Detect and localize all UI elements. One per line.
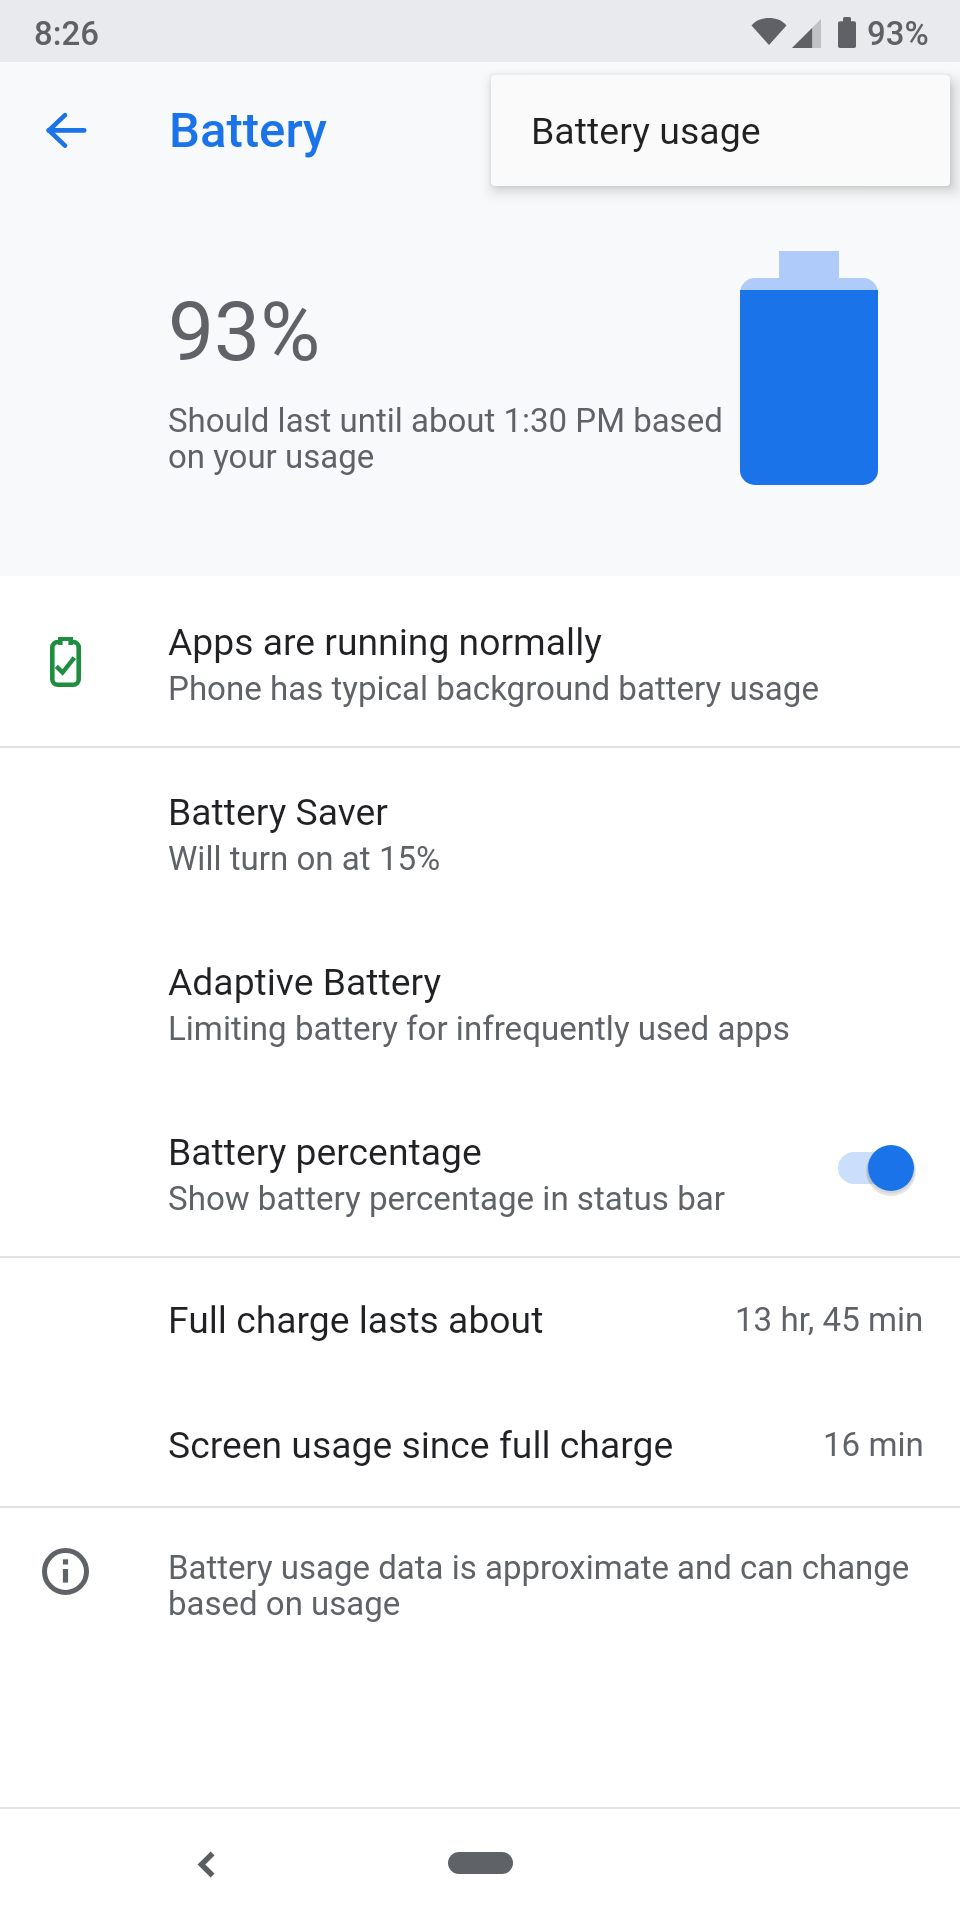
staticText: Battery Saver [168, 790, 388, 834]
staticText: Should last until about 1:30 PM based on… [168, 401, 738, 476]
staticText: 93% [867, 14, 929, 53]
button[interactable]: Adaptive Battery [0, 917, 960, 1087]
staticText: Apps are running normally [168, 620, 602, 664]
staticText: Battery percentage [168, 1130, 482, 1174]
staticText: Battery [169, 102, 327, 159]
staticText: 93% [168, 284, 321, 380]
staticText: Screen usage since full charge [168, 1423, 674, 1467]
button[interactable]: Battery usage [491, 75, 950, 186]
staticText: Battery usage [531, 109, 761, 153]
button[interactable]: Apps are running normally [0, 576, 960, 746]
staticText: 13 hr, 45 min [735, 1300, 924, 1339]
staticText: Battery usage data is approximate and ca… [168, 1548, 928, 1623]
button[interactable]: Full charge lasts about [0, 1257, 960, 1382]
staticText: 16 min [823, 1425, 924, 1464]
button[interactable]: Screen usage since full charge [0, 1382, 960, 1507]
button[interactable]: Battery percentage [0, 1087, 960, 1257]
staticText: Full charge lasts about [168, 1298, 544, 1342]
button[interactable]: Battery Saver [0, 747, 960, 917]
staticText: Will turn on at 15% [168, 839, 441, 878]
staticText: Adaptive Battery [168, 960, 442, 1004]
button[interactable]: Back [20, 84, 112, 176]
button[interactable]: Battery percentage switch, on [808, 1118, 948, 1218]
staticText: Phone has typical background battery usa… [168, 669, 819, 708]
staticText: Show battery percentage in status bar [168, 1179, 725, 1218]
button[interactable]: Back [167, 1814, 247, 1894]
staticText: 8:26 [34, 14, 100, 53]
button[interactable]: Home [400, 1828, 560, 1898]
staticText: Limiting battery for infrequently used a… [168, 1009, 790, 1048]
